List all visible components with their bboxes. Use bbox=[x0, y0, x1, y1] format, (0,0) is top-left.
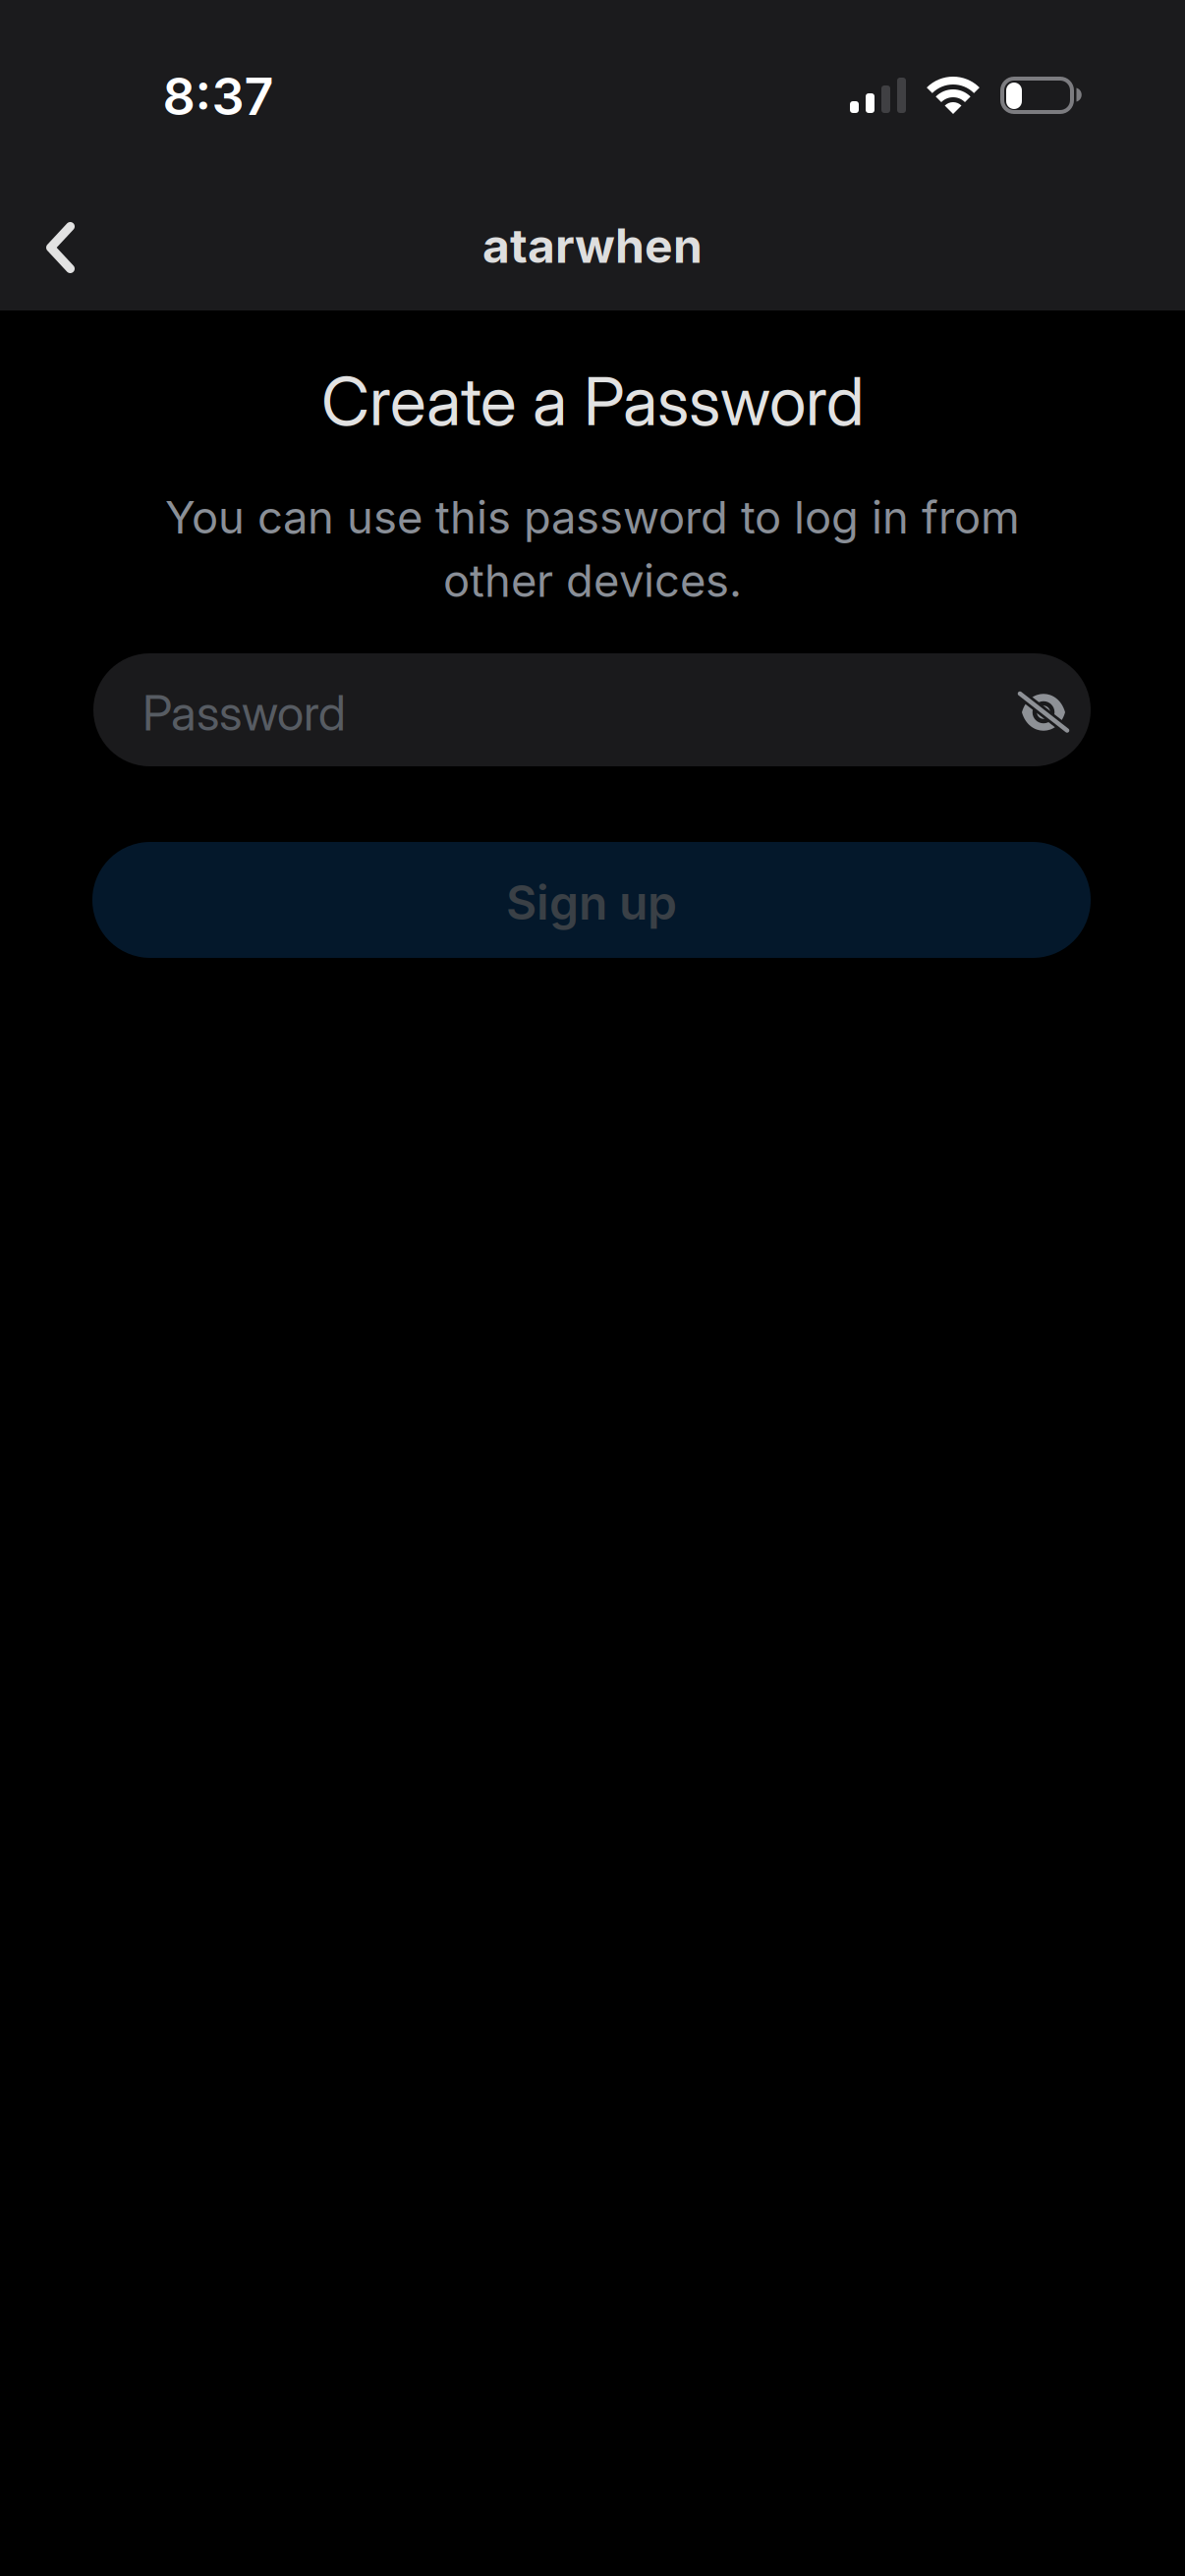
staticText: You can use this password to log in from bbox=[165, 490, 1020, 544]
staticText: atarwhen bbox=[482, 217, 703, 274]
staticText: 8:37 bbox=[163, 65, 274, 127]
staticText: Sign up bbox=[506, 874, 677, 931]
staticText: Password bbox=[142, 683, 346, 742]
button[interactable]: Back bbox=[14, 200, 108, 295]
staticText: Create a Password bbox=[321, 360, 864, 441]
staticText: other devices. bbox=[443, 554, 742, 608]
button[interactable]: Show password bbox=[996, 664, 1091, 758]
button[interactable]: Sign up bbox=[92, 842, 1091, 958]
